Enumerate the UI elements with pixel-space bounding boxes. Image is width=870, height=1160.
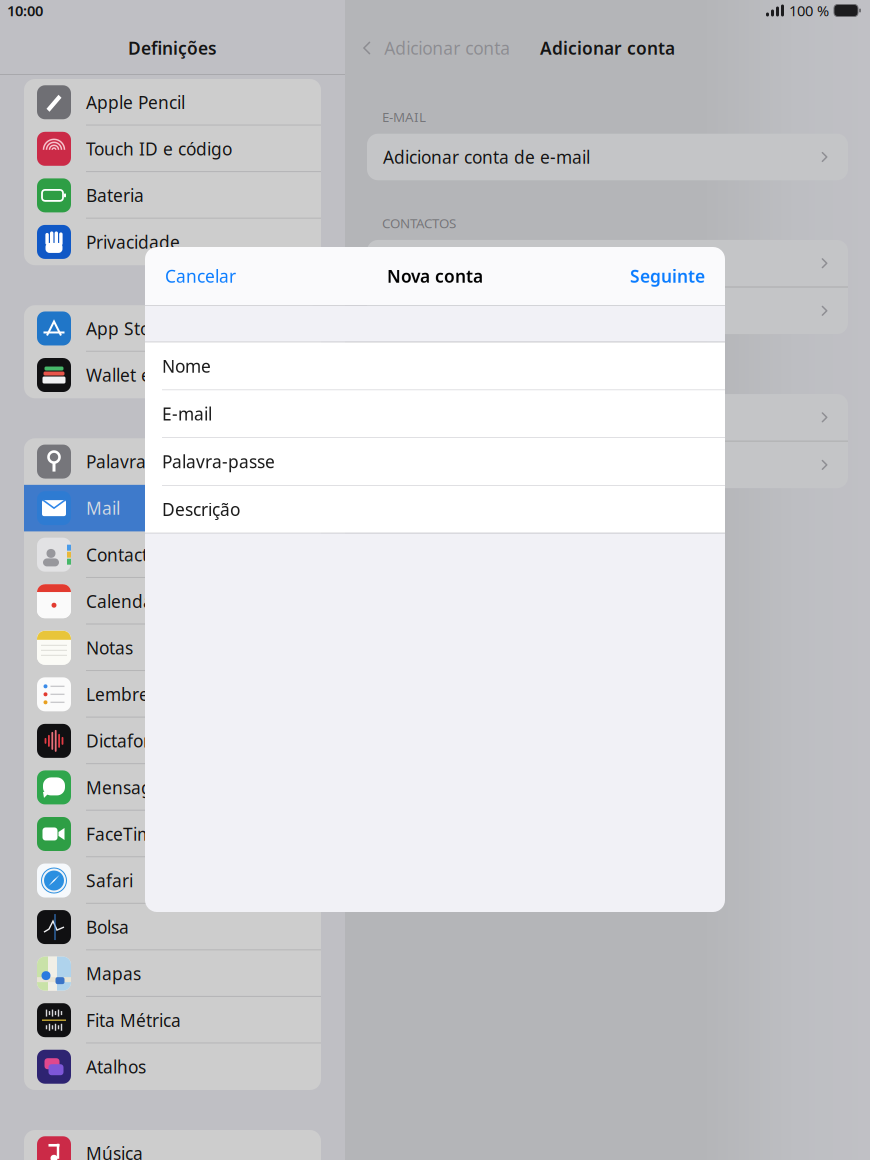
staticText: E-mail — [162, 402, 212, 425]
staticText: Palavras-passe — [86, 450, 207, 473]
button[interactable]: Bolsa — [24, 904, 321, 950]
staticText: Nova conta — [387, 264, 483, 287]
staticText: Wallet e Apple Pay — [86, 363, 237, 386]
button[interactable]: Dictafone — [24, 718, 321, 764]
button[interactable]: Seguinte — [630, 264, 705, 287]
button[interactable]: Atalhos — [24, 1043, 321, 1090]
staticText: 100 % — [789, 1, 829, 20]
staticText: Mensagens — [86, 776, 181, 799]
staticText: Mail — [86, 497, 120, 520]
button[interactable]: Contactos — [24, 531, 321, 578]
staticText: Privacidade — [86, 230, 180, 253]
button[interactable]: Música — [24, 1130, 321, 1160]
staticText: Contactos — [86, 543, 166, 566]
button[interactable]: Bateria — [24, 172, 321, 219]
staticText: Adicionar conta de e-mail — [383, 145, 590, 168]
staticText: Mapas — [86, 962, 141, 985]
staticText: Apple Pencil — [86, 91, 185, 114]
staticText: Fita Métrica — [86, 1009, 181, 1032]
staticText: Música — [86, 1142, 143, 1160]
staticText: Seguinte — [630, 264, 705, 287]
button[interactable]: Fita Métrica — [24, 997, 321, 1043]
staticText: Definições — [128, 36, 217, 59]
staticText: Safari — [86, 869, 133, 892]
staticText: Calendário — [86, 590, 174, 613]
button[interactable]: Privacidade — [24, 219, 321, 265]
staticText: CONTACTOS — [382, 214, 456, 232]
button[interactable]: Lembretes — [24, 671, 321, 717]
button[interactable]: Adicionar conta de e-mail — [367, 134, 848, 180]
button[interactable]: Touch ID e código — [24, 125, 321, 172]
button[interactable]: Apple Pencil — [24, 79, 321, 125]
button[interactable]: Wallet e Apple Pay — [24, 352, 321, 398]
button[interactable] — [367, 240, 848, 286]
button[interactable]: FaceTime — [24, 811, 321, 857]
staticText: Atalhos — [86, 1055, 146, 1078]
staticText: Descrição — [162, 498, 240, 521]
button[interactable]: Palavras-passe — [24, 438, 321, 485]
staticText: Bateria — [86, 184, 144, 207]
button[interactable] — [367, 442, 848, 488]
button[interactable]: Cancelar — [165, 264, 236, 287]
button[interactable] — [367, 394, 848, 441]
staticText: Adicionar conta — [540, 36, 675, 59]
button[interactable]: Mapas — [24, 950, 321, 997]
staticText: Dictafone — [86, 729, 164, 752]
staticText: E-MAIL — [382, 108, 426, 126]
staticText: Adicionar conta — [384, 36, 510, 59]
staticText: FaceTime — [86, 822, 163, 845]
button[interactable]: Mensagens — [24, 764, 321, 811]
staticText: App Store — [86, 317, 167, 340]
button[interactable]: App Store — [24, 305, 321, 352]
button[interactable] — [367, 287, 848, 334]
staticText: Nome — [162, 354, 211, 377]
staticText: Cancelar — [165, 264, 236, 287]
button[interactable]: Safari — [24, 857, 321, 904]
button[interactable]: Calendário — [24, 578, 321, 624]
staticText: Notas — [86, 636, 133, 659]
staticText: Bolsa — [86, 916, 129, 939]
button[interactable]: Notas — [24, 624, 321, 671]
staticText: 10:00 — [7, 1, 43, 20]
staticText: Touch ID e código — [86, 137, 232, 160]
staticText: Palavra-passe — [162, 450, 275, 473]
button[interactable]: Adicionar conta — [357, 36, 510, 59]
button[interactable]: Mail — [24, 485, 321, 531]
staticText: Lembretes — [86, 683, 173, 706]
